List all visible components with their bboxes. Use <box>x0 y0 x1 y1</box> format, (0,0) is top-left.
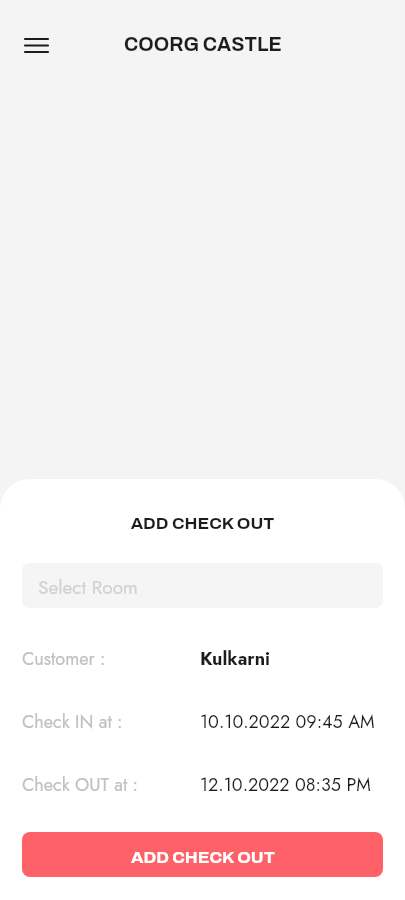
button[interactable]: Open navigation menu <box>12 21 60 69</box>
staticText: ADD CHECK OUT <box>0 514 405 533</box>
staticText: 10.10.2022 09:45 AM <box>200 709 375 735</box>
staticText: 12.10.2022 08:35 PM <box>200 772 371 798</box>
staticText: Kulkarni <box>200 646 271 672</box>
staticText: ADD CHECK OUT <box>131 848 275 867</box>
staticText: Check OUT at : <box>22 772 200 798</box>
button[interactable]: Select Room <box>22 563 383 608</box>
staticText: COORG CASTLE <box>124 34 282 55</box>
staticText: Check IN at : <box>22 709 200 735</box>
staticText: Customer : <box>22 646 200 672</box>
button[interactable]: ADD CHECK OUT <box>22 832 383 877</box>
staticText: Select Room <box>38 574 138 601</box>
